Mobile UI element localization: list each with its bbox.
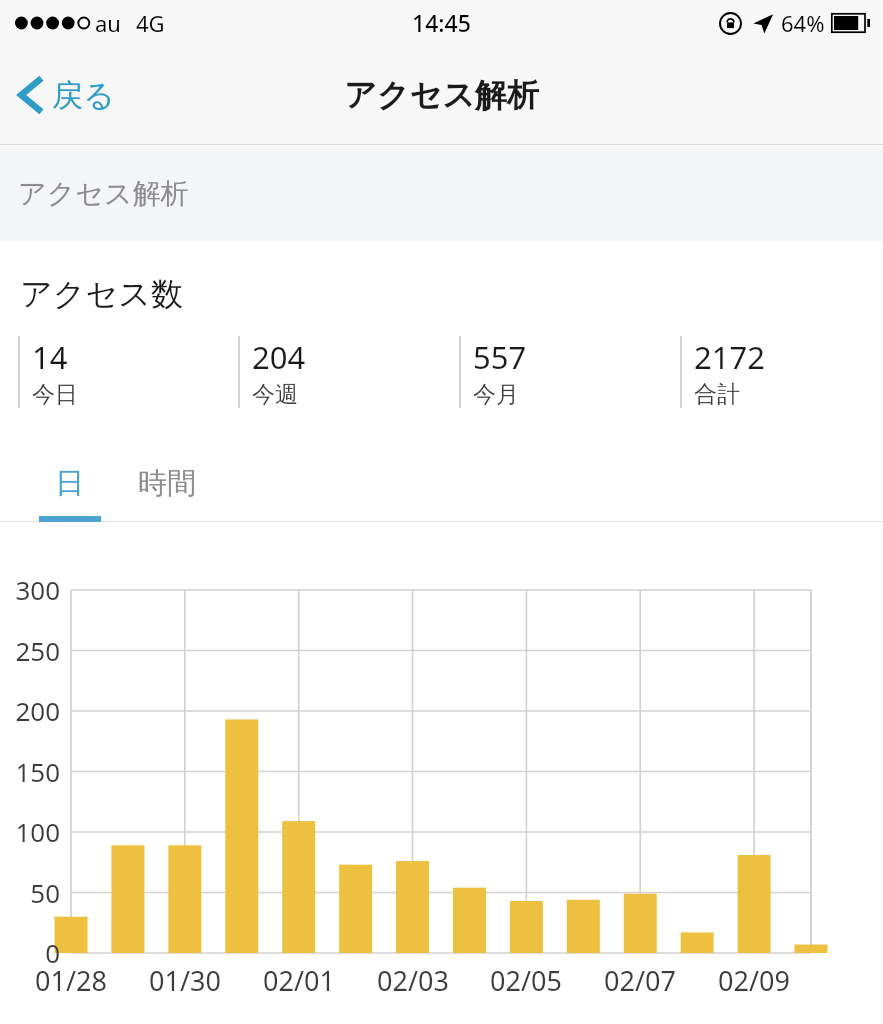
staticText: 150: [0, 754, 60, 789]
staticText: 14:45: [412, 7, 471, 38]
staticText: 時間: [138, 465, 196, 502]
staticText: 204: [252, 336, 306, 378]
staticText: 今月: [473, 380, 519, 408]
staticText: 14: [32, 336, 68, 378]
staticText: 0: [0, 935, 60, 970]
staticText: 01/28: [26, 962, 116, 999]
staticText: 200: [0, 693, 60, 728]
staticText: 02/01: [254, 962, 344, 999]
staticText: 01/30: [140, 962, 230, 999]
staticText: 64%: [781, 8, 825, 38]
staticText: 4G: [136, 8, 165, 38]
button[interactable]: 戻る: [0, 62, 133, 128]
staticText: 2172: [694, 336, 765, 378]
staticText: アクセス解析: [18, 176, 189, 211]
staticText: アクセス解析: [344, 75, 539, 115]
staticText: 100: [0, 814, 60, 849]
staticText: 300: [0, 572, 60, 607]
staticText: 今週: [252, 380, 298, 408]
staticText: 02/03: [368, 962, 458, 999]
staticText: 557: [473, 336, 527, 378]
staticText: 戻る: [52, 76, 115, 115]
staticText: 50: [0, 875, 60, 910]
staticText: 今日: [32, 380, 78, 408]
staticText: 02/05: [481, 962, 571, 999]
staticText: 合計: [694, 380, 740, 408]
staticText: 日: [55, 465, 84, 502]
button[interactable]: 2172: [680, 336, 883, 408]
button[interactable]: 日: [26, 456, 112, 522]
button[interactable]: 14: [18, 336, 238, 408]
button[interactable]: 時間: [112, 456, 222, 522]
staticText: 02/07: [595, 962, 685, 999]
staticText: アクセス数: [20, 274, 183, 314]
button[interactable]: 204: [238, 336, 459, 408]
staticText: 250: [0, 633, 60, 668]
staticText: 02/09: [709, 962, 799, 999]
button[interactable]: 557: [459, 336, 680, 408]
staticText: au: [95, 8, 121, 38]
